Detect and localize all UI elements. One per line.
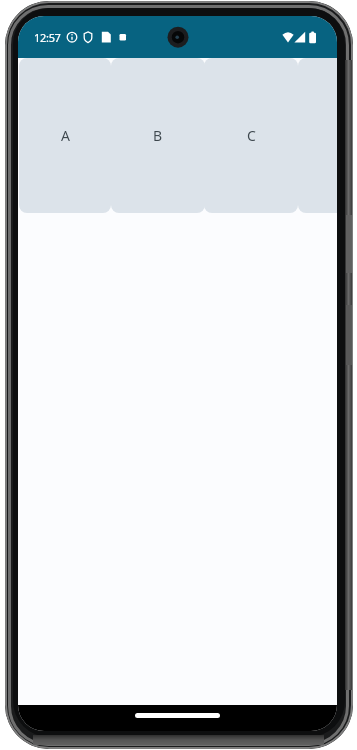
staticText: A [61, 126, 70, 145]
button[interactable]: A [19, 58, 111, 213]
staticText: 12:57 [34, 30, 61, 45]
button[interactable]: C [204, 58, 298, 213]
staticText: C [247, 126, 256, 145]
staticText: B [153, 126, 163, 145]
button[interactable]: B [111, 58, 205, 213]
